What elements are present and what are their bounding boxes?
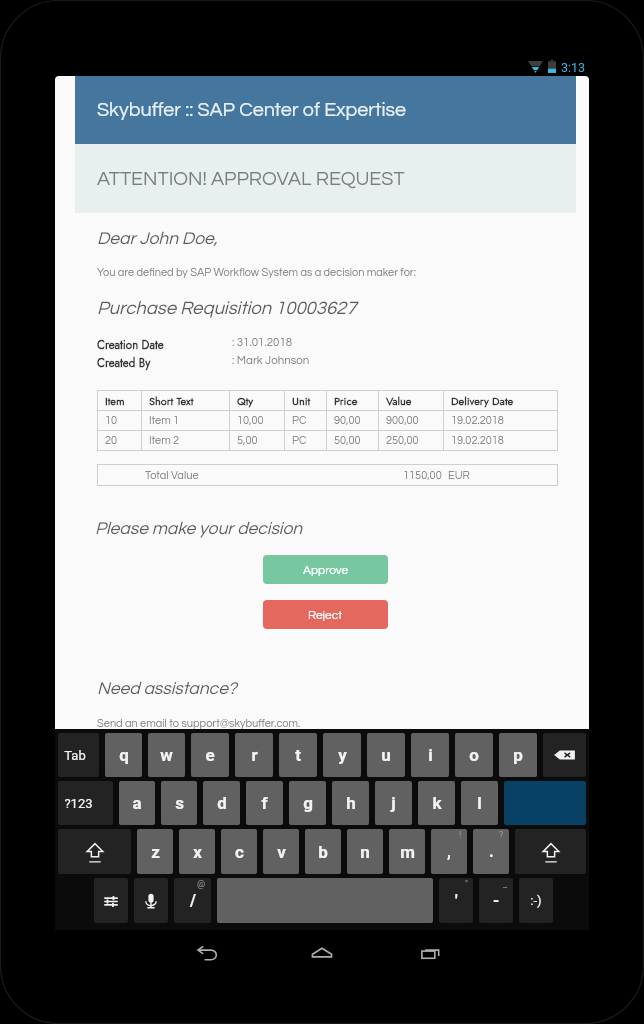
staticText: Item 2 <box>149 435 180 446</box>
staticText: : Mark Johnson <box>232 355 310 367</box>
staticText: 900,00 <box>386 415 419 426</box>
button[interactable]: f <box>246 781 283 825</box>
staticText: j <box>391 793 396 813</box>
staticText: , <box>447 842 451 861</box>
button[interactable]: Home <box>294 930 350 976</box>
button[interactable]: Reject <box>263 600 388 629</box>
button[interactable]: j <box>375 781 412 825</box>
button[interactable]: Voice input <box>134 878 168 923</box>
button[interactable]: r <box>235 733 273 777</box>
button[interactable]: v <box>263 829 299 874</box>
button[interactable]: q <box>105 733 142 777</box>
staticText: p <box>513 745 523 765</box>
staticText: Send an email to support@skybuffer.com. <box>97 718 301 729</box>
staticText: s <box>175 793 184 813</box>
staticText: t <box>295 745 301 765</box>
button[interactable]: i <box>411 733 449 777</box>
staticText: 90,00 <box>334 415 361 426</box>
button[interactable]: n <box>347 829 383 874</box>
button[interactable]: ?123 <box>58 781 113 825</box>
button[interactable]: ? <box>473 829 509 874</box>
staticText: :-) <box>530 893 542 908</box>
button[interactable]: :-) <box>519 878 553 923</box>
button[interactable]: x <box>179 829 215 874</box>
staticText: " <box>465 879 468 890</box>
staticText: 3:13 <box>561 60 586 75</box>
button[interactable]: y <box>323 733 361 777</box>
staticText: Unit <box>292 393 311 409</box>
staticText: Price <box>334 393 358 409</box>
button[interactable]: _ <box>479 878 513 923</box>
button[interactable]: a <box>119 781 155 825</box>
button[interactable]: p <box>499 733 537 777</box>
button[interactable]: Tab <box>58 733 99 777</box>
staticText: ' <box>455 891 458 910</box>
staticText: 1150,00 <box>403 470 442 481</box>
staticText: EUR <box>448 470 470 481</box>
staticText: v <box>277 842 286 862</box>
staticText: _ <box>503 879 508 890</box>
button[interactable]: Backspace <box>543 733 586 777</box>
staticText: PC <box>292 435 307 446</box>
staticText: 19.02.2018 <box>451 435 504 446</box>
button[interactable]: @ <box>174 878 211 923</box>
button[interactable]: c <box>221 829 257 874</box>
staticText: Approve <box>303 564 349 576</box>
button[interactable]: o <box>455 733 493 777</box>
staticText: w <box>160 745 173 765</box>
staticText: PC <box>292 415 307 426</box>
staticText: - <box>493 891 500 910</box>
staticText: You are defined by SAP Workflow System a… <box>97 267 416 278</box>
staticText: : 31.01.2018 <box>232 337 293 349</box>
button[interactable]: e <box>191 733 229 777</box>
button[interactable]: d <box>203 781 240 825</box>
staticText: x <box>193 842 202 862</box>
staticText: b <box>318 842 328 862</box>
button[interactable]: b <box>305 829 341 874</box>
staticText: q <box>119 745 129 765</box>
staticText: Value <box>386 393 412 409</box>
button[interactable]: Back <box>180 930 236 976</box>
button[interactable]: g <box>289 781 326 825</box>
staticText: 10,00 <box>237 415 264 426</box>
staticText: Qty <box>237 393 254 409</box>
staticText: / <box>190 891 196 910</box>
button[interactable]: " <box>439 878 473 923</box>
button[interactable]: m <box>389 829 425 874</box>
staticText: c <box>235 842 244 862</box>
staticText: y <box>338 745 347 765</box>
staticText: h <box>346 793 356 813</box>
staticText: o <box>469 745 479 765</box>
button[interactable]: ! <box>431 829 467 874</box>
staticText: f <box>261 793 268 813</box>
button[interactable]: Approve <box>263 555 388 584</box>
button[interactable]: Settings <box>94 878 128 923</box>
staticText: Please make your decision <box>95 520 303 538</box>
staticText: . <box>489 842 494 861</box>
staticText: n <box>360 842 370 862</box>
staticText: u <box>381 745 391 765</box>
button[interactable]: h <box>332 781 369 825</box>
button[interactable]: l <box>461 781 498 825</box>
button[interactable]: t <box>279 733 317 777</box>
staticText: Creation Date <box>97 337 164 354</box>
button[interactable]: Shift <box>515 829 586 874</box>
button[interactable]: z <box>137 829 173 874</box>
staticText: 19.02.2018 <box>451 415 504 426</box>
button[interactable]: u <box>367 733 405 777</box>
button[interactable]: Shift <box>58 829 131 874</box>
staticText: e <box>205 745 215 765</box>
staticText: m <box>400 842 415 862</box>
button[interactable]: s <box>161 781 197 825</box>
button[interactable]: w <box>148 733 185 777</box>
button[interactable]: Recent apps <box>403 930 459 976</box>
staticText: Skybuffer :: SAP Center of Expertise <box>97 100 406 120</box>
staticText: ! <box>459 830 462 841</box>
staticText: Reject <box>308 609 343 621</box>
staticText: g <box>303 793 313 813</box>
staticText: Delivery Date <box>451 393 514 409</box>
button[interactable]: k <box>418 781 455 825</box>
staticText: 20 <box>105 435 118 446</box>
